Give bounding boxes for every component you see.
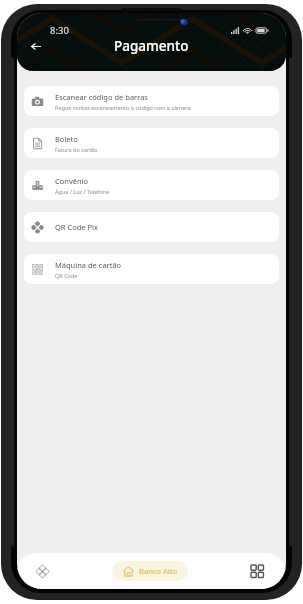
button[interactable]: Voltar bbox=[23, 33, 49, 59]
staticText: Pague contas escaneamento o código com a… bbox=[55, 104, 191, 111]
button[interactable]: Menu bbox=[245, 559, 269, 583]
staticText: Boleto bbox=[55, 134, 78, 144]
staticText: Fatura do cartão bbox=[55, 146, 98, 153]
button[interactable]: Máquina de cartão bbox=[24, 254, 279, 284]
button[interactable]: Pix bbox=[30, 559, 54, 583]
staticText: QR Code Pix bbox=[55, 222, 98, 232]
staticText: 8:30 bbox=[50, 24, 69, 37]
button[interactable]: Banco Alto bbox=[112, 561, 188, 581]
button[interactable]: Boleto bbox=[24, 128, 279, 158]
staticText: Convênio bbox=[55, 176, 89, 186]
staticText: Máquina de cartão bbox=[55, 260, 122, 270]
staticText: Escanear código de barras bbox=[55, 92, 148, 102]
staticText: Banco Alto bbox=[139, 566, 178, 576]
staticText: Água / Luz / Telefone bbox=[55, 188, 110, 195]
button[interactable]: Convênio bbox=[24, 170, 279, 200]
button[interactable]: QR Code Pix bbox=[24, 212, 279, 242]
staticText: Pagamento bbox=[114, 37, 189, 55]
button[interactable]: Escanear código de barras bbox=[24, 86, 279, 116]
staticText: QR Code bbox=[55, 272, 78, 279]
